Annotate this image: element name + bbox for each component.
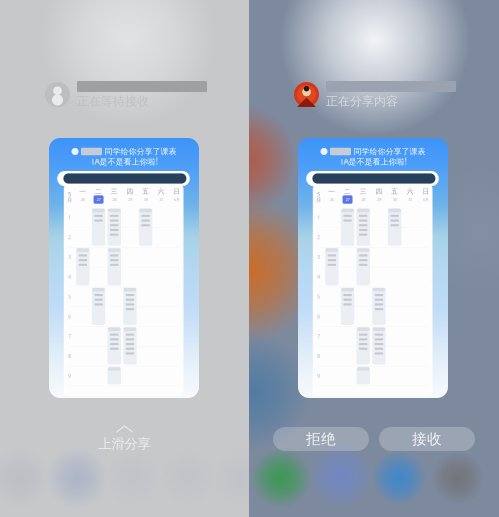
staticText: TA是不是看上你啦! bbox=[90, 156, 157, 167]
staticText: 正在分享内容 bbox=[326, 94, 398, 109]
staticText: 日 bbox=[423, 187, 430, 196]
staticText: 31 bbox=[159, 197, 163, 202]
button[interactable]: 接收 bbox=[379, 427, 475, 451]
staticText: 29 bbox=[128, 197, 132, 202]
staticText: 7 bbox=[317, 333, 320, 340]
staticText: 3 bbox=[68, 253, 71, 261]
staticText: 一 bbox=[328, 187, 335, 196]
staticText: 日 bbox=[173, 187, 180, 196]
staticText: 二 bbox=[344, 187, 351, 196]
staticText: 2 bbox=[68, 234, 71, 241]
staticText: 8 bbox=[68, 352, 71, 360]
staticText: 5 bbox=[317, 293, 320, 300]
staticText: 三 bbox=[111, 187, 118, 196]
staticText: 上滑分享 bbox=[98, 435, 150, 452]
staticText: 三 bbox=[360, 187, 367, 196]
staticText: 五 bbox=[142, 187, 149, 196]
staticText: 5 bbox=[68, 293, 71, 300]
staticText: 6 bbox=[68, 313, 71, 320]
staticText: 四 bbox=[375, 187, 382, 196]
staticText: 一 bbox=[79, 187, 86, 196]
staticText: 接收 bbox=[412, 430, 442, 448]
staticText: 2 bbox=[317, 234, 320, 241]
staticText: 26 bbox=[81, 197, 85, 202]
staticText: 六 bbox=[158, 187, 165, 196]
staticText: 6 bbox=[317, 313, 320, 320]
staticText: 7 bbox=[68, 333, 71, 340]
staticText: TA是不是看上你啦! bbox=[339, 156, 406, 167]
staticText: 拒绝 bbox=[306, 430, 336, 448]
staticText: 同学给你分享了课表 bbox=[104, 147, 176, 156]
staticText: 30 bbox=[393, 197, 397, 202]
staticText: 五 bbox=[391, 187, 398, 196]
staticText: 26 bbox=[330, 197, 334, 202]
staticText: 4 bbox=[317, 273, 320, 280]
staticText: 28 bbox=[361, 197, 365, 202]
staticText: 6月 bbox=[174, 197, 180, 202]
staticText: 5 bbox=[317, 191, 320, 198]
staticText: 6月 bbox=[423, 197, 429, 202]
staticText: 六 bbox=[407, 187, 414, 196]
staticText: 27 bbox=[346, 197, 350, 202]
staticText: 二 bbox=[95, 187, 102, 196]
staticText: 四 bbox=[126, 187, 133, 196]
staticText: 同学给你分享了课表 bbox=[353, 147, 425, 156]
staticText: 4 bbox=[68, 273, 71, 280]
button[interactable]: 拒绝 bbox=[273, 427, 369, 451]
staticText: 9 bbox=[68, 372, 71, 379]
staticText: 30 bbox=[144, 197, 148, 202]
staticText: 27 bbox=[96, 197, 100, 202]
button[interactable]: 上滑分享 bbox=[98, 435, 150, 452]
staticText: 8 bbox=[317, 352, 320, 360]
staticText: 28 bbox=[112, 197, 116, 202]
staticText: 1 bbox=[317, 214, 320, 221]
staticText: 正在等待接收 bbox=[77, 94, 149, 109]
staticText: 29 bbox=[377, 197, 381, 202]
staticText: 月 bbox=[67, 197, 72, 203]
staticText: 1 bbox=[68, 214, 71, 221]
staticText: 9 bbox=[317, 372, 320, 379]
staticText: 5 bbox=[68, 191, 71, 198]
staticText: 月 bbox=[316, 197, 321, 203]
staticText: 3 bbox=[317, 253, 320, 261]
staticText: 31 bbox=[408, 197, 412, 202]
